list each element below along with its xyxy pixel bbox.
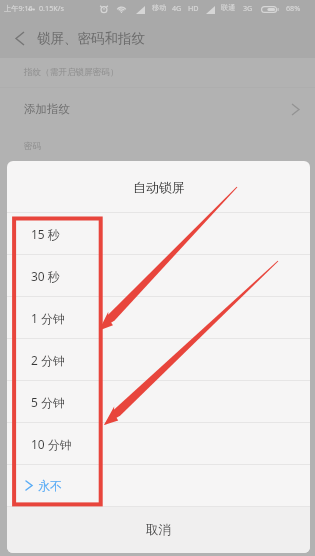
button[interactable]: 15 秒 — [7, 213, 310, 254]
staticText: 添加指纹 — [24, 102, 70, 116]
staticText: 上午9:16 — [4, 3, 33, 13]
staticText: 68% — [286, 3, 301, 13]
button[interactable]: 永不 — [7, 465, 310, 506]
staticText: 30 秒 — [31, 268, 60, 284]
button[interactable]: 添加指纹 — [0, 88, 315, 130]
staticText: 永不 — [38, 478, 62, 493]
staticText: 10 分钟 — [31, 436, 72, 452]
staticText: 0.15K/s — [39, 3, 64, 13]
staticText: 自动锁屏 — [133, 179, 185, 195]
button[interactable]: 1 分钟 — [7, 297, 310, 338]
staticText: 联通 — [221, 3, 236, 12]
button[interactable]: 2 分钟 — [7, 339, 310, 380]
staticText: 锁屏、密码和指纹 — [37, 30, 145, 47]
staticText: 指纹（需开启锁屏密码） — [24, 67, 119, 78]
button[interactable]: Back — [5, 18, 34, 58]
staticText: 3G — [243, 3, 253, 13]
button[interactable]: 取消 — [7, 507, 310, 553]
staticText: 4G — [172, 3, 182, 13]
staticText: 15 秒 — [31, 226, 60, 242]
button[interactable]: 10 分钟 — [7, 423, 310, 464]
staticText: 移动 — [152, 3, 167, 12]
staticText: 取消 — [146, 522, 171, 538]
button[interactable]: 30 秒 — [7, 255, 310, 296]
staticText: 5 分钟 — [31, 394, 65, 410]
staticText: HD — [188, 3, 199, 13]
staticText: 1 分钟 — [31, 310, 65, 326]
staticText: 2 分钟 — [31, 352, 65, 368]
button[interactable]: 5 分钟 — [7, 381, 310, 422]
staticText: 密码 — [24, 141, 42, 152]
